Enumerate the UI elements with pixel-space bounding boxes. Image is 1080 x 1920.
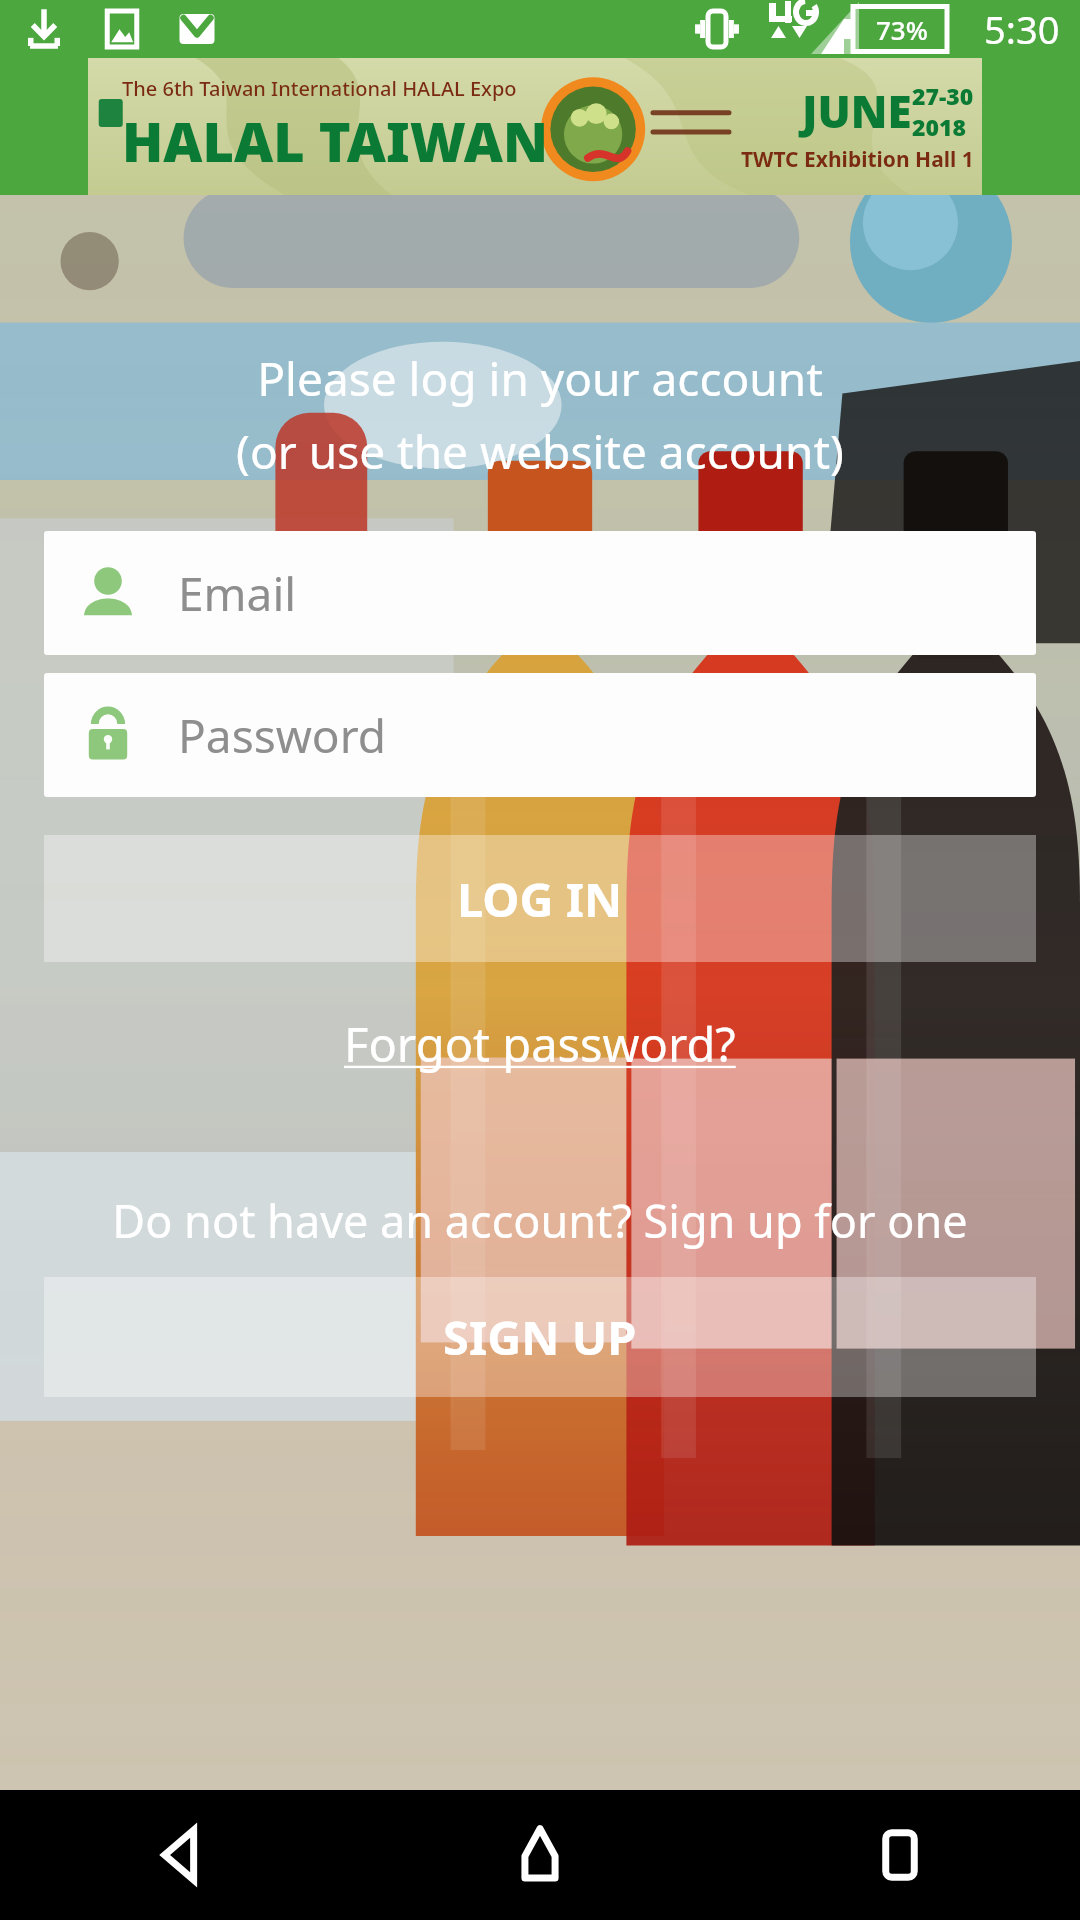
staticText: 27-30 (912, 80, 974, 111)
staticText: 5:30 (984, 3, 1060, 55)
staticText: 73% (876, 12, 928, 47)
staticText: JUNE (802, 81, 912, 141)
button[interactable]: Home (360, 1790, 720, 1920)
staticText: TWTC Exhibition Hall 1 (741, 145, 974, 174)
button[interactable]: Back (0, 1790, 360, 1920)
button[interactable]: Email (44, 531, 1036, 655)
staticText: The 6th Taiwan International HALAL Expo (122, 75, 517, 102)
staticText: Password (178, 704, 387, 767)
button[interactable]: Password (44, 673, 1036, 797)
staticText: LOG IN (457, 867, 623, 931)
button[interactable]: Forgot password? (330, 1004, 750, 1084)
staticText: SIGN UP (443, 1305, 637, 1369)
button[interactable]: Recent apps (720, 1790, 1080, 1920)
staticText: 2018 (912, 111, 966, 142)
button[interactable]: LOG IN (44, 835, 1036, 962)
button[interactable]: Halal Taiwan Expo banner (88, 58, 982, 195)
button[interactable]: SIGN UP (44, 1277, 1036, 1397)
staticText: Email (178, 562, 297, 625)
staticText: Do not have an account? Sign up for one (112, 1190, 968, 1251)
staticText: (or use the website account) (236, 420, 844, 483)
staticText: Forgot password? (344, 1012, 736, 1076)
staticText: Please log in your account (257, 347, 823, 410)
staticText: HALAL TAIWAN (122, 104, 548, 178)
